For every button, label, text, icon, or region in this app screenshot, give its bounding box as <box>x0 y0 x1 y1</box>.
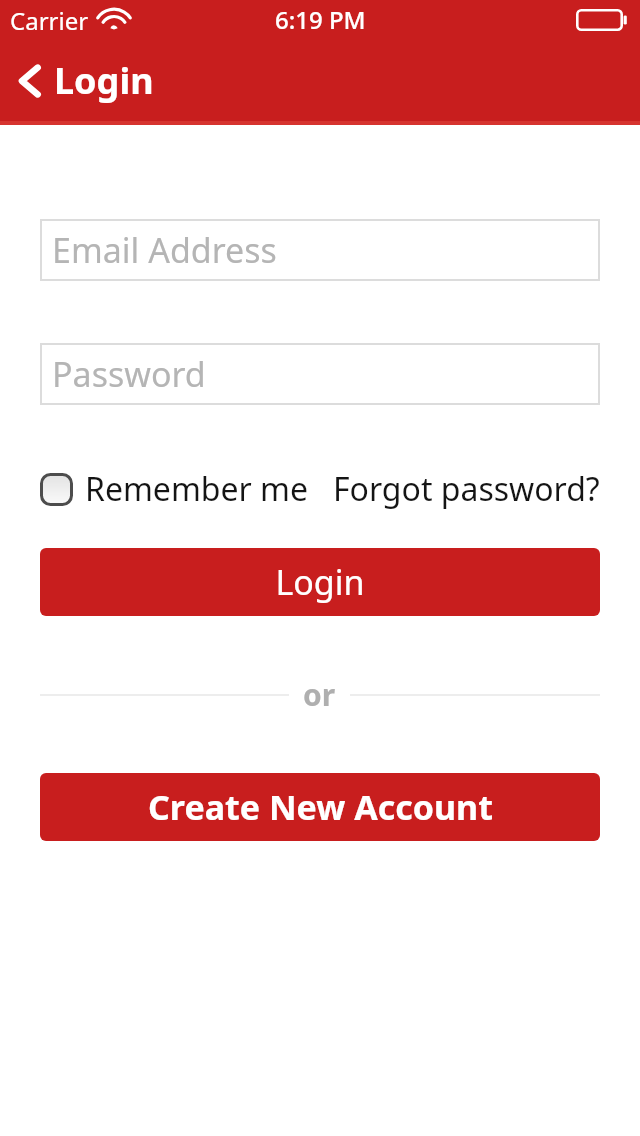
staticText: Password <box>52 351 206 397</box>
button[interactable]: Login <box>40 548 600 616</box>
button[interactable]: Email Address <box>40 219 600 281</box>
staticText: Forgot password? <box>333 467 600 511</box>
staticText: Login <box>275 559 365 605</box>
button[interactable]: Forgot password? <box>333 467 600 511</box>
staticText: Create New Account <box>148 784 493 830</box>
staticText: Login <box>54 56 154 105</box>
button[interactable]: Remember me <box>40 467 309 511</box>
button[interactable]: Create New Account <box>40 773 600 841</box>
button[interactable]: Password <box>40 343 600 405</box>
button[interactable]: Back <box>0 48 160 113</box>
staticText: Remember me <box>85 467 309 511</box>
staticText: Carrier <box>10 4 89 37</box>
staticText: 6:19 PM <box>275 3 366 36</box>
staticText: or <box>303 674 336 715</box>
staticText: Email Address <box>52 227 277 273</box>
